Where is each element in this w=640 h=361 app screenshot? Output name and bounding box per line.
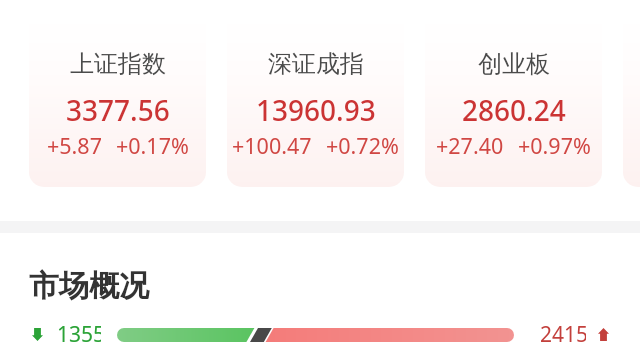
- staticText: +0.17%: [116, 131, 189, 160]
- staticText: +27.40: [436, 131, 504, 160]
- staticText: 3377.56: [66, 91, 170, 129]
- staticText: 深证成指: [268, 49, 364, 79]
- staticText: +0.72%: [326, 131, 399, 160]
- button[interactable]: 深证成指: [227, 15, 404, 187]
- staticText: 2860.24: [462, 91, 566, 129]
- staticText: 创业板: [478, 49, 550, 79]
- other: Declining stocks: [32, 328, 43, 341]
- button[interactable]: Declining stocks: [0, 320, 640, 349]
- staticText: 上证指数: [70, 49, 166, 79]
- button[interactable]: 科创50: [623, 15, 640, 187]
- staticText: 13960.93: [256, 91, 376, 129]
- staticText: 市场概况: [29, 267, 149, 305]
- staticText: +0.97%: [518, 131, 591, 160]
- staticText: +5.87: [47, 131, 102, 160]
- staticText: +100.47: [232, 131, 312, 160]
- button[interactable]: 上证指数: [29, 15, 206, 187]
- staticText: 2415: [540, 320, 586, 349]
- other: Advancing stocks: [598, 328, 609, 341]
- button[interactable]: 创业板: [425, 15, 602, 187]
- staticText: 1355: [57, 320, 101, 349]
